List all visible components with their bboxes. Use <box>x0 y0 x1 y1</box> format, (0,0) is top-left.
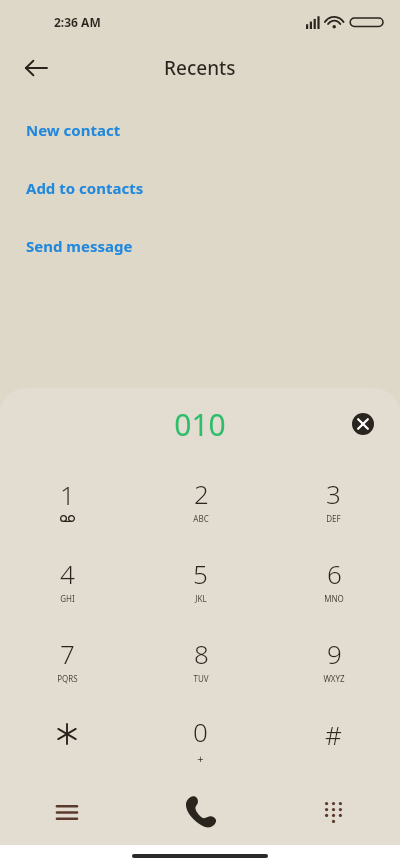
button[interactable]: 7 <box>0 620 134 700</box>
staticText: PQRS <box>57 673 78 684</box>
staticText: + <box>197 751 204 766</box>
button[interactable]: 5 <box>134 540 267 620</box>
button[interactable]: # <box>267 700 400 780</box>
staticText: MNO <box>324 593 344 604</box>
staticText: Recents <box>164 55 236 81</box>
staticText: 8 <box>194 636 209 671</box>
staticText: 010 <box>174 404 226 445</box>
button[interactable]: 0 <box>134 700 267 780</box>
staticText: 5 <box>193 556 208 591</box>
button[interactable]: 4 <box>0 540 134 620</box>
staticText: Send message <box>26 236 133 256</box>
button[interactable]: Clear <box>346 407 380 441</box>
button[interactable]: 9 <box>267 620 400 700</box>
button[interactable]: 1 <box>0 460 134 540</box>
staticText: 0 <box>193 714 208 749</box>
button[interactable]: New contact <box>0 116 400 144</box>
button[interactable]: Menu <box>0 780 134 845</box>
staticText: # <box>325 717 342 752</box>
staticText: 9 <box>327 636 342 671</box>
staticText: 7 <box>60 636 75 671</box>
button[interactable]: Add to contacts <box>0 174 400 202</box>
staticText: DEF <box>326 513 341 524</box>
staticText: 2:36 AM <box>54 14 101 30</box>
staticText: ABC <box>193 513 209 524</box>
staticText: JKL <box>195 593 207 604</box>
button[interactable]: Back <box>14 46 58 90</box>
button[interactable]: 2 <box>134 460 267 540</box>
staticText: Add to contacts <box>26 178 144 198</box>
staticText: 2 <box>194 476 209 511</box>
button[interactable] <box>0 700 134 780</box>
staticText: TUV <box>193 673 209 684</box>
button[interactable]: Send message <box>0 232 400 260</box>
staticText: New contact <box>26 120 121 140</box>
button[interactable]: Keypad <box>267 780 400 845</box>
button[interactable]: 6 <box>267 540 400 620</box>
button[interactable]: 3 <box>267 460 400 540</box>
button[interactable]: Call <box>134 780 267 845</box>
staticText: 1 <box>60 477 75 512</box>
staticText: 3 <box>326 476 341 511</box>
staticText: 4 <box>60 556 75 591</box>
staticText: 6 <box>327 556 342 591</box>
staticText: WXYZ <box>323 673 345 684</box>
button[interactable]: 8 <box>134 620 267 700</box>
staticText: GHI <box>60 593 75 604</box>
